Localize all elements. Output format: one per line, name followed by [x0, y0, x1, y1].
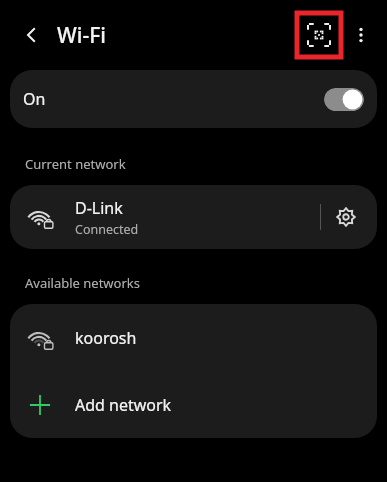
staticText: Available networks [25, 274, 140, 292]
button[interactable]: koorosh [10, 304, 377, 371]
button[interactable]: Network settings [325, 196, 367, 238]
staticText: On [23, 88, 46, 110]
staticText: Connected [75, 221, 139, 238]
button[interactable]: Wi-Fi toggle, on [324, 88, 364, 111]
button[interactable]: On [10, 70, 377, 128]
button[interactable]: Add network [10, 371, 377, 438]
staticText: Wi-Fi [57, 21, 106, 50]
staticText: koorosh [75, 327, 137, 349]
staticText: Add network [75, 394, 172, 416]
button[interactable]: Scan QR code [297, 13, 341, 57]
button[interactable]: D-Link [10, 185, 377, 249]
button[interactable]: Back [14, 17, 50, 53]
staticText: D-Link [75, 197, 123, 219]
staticText: Current network [25, 155, 126, 173]
button[interactable]: More options [345, 19, 377, 51]
